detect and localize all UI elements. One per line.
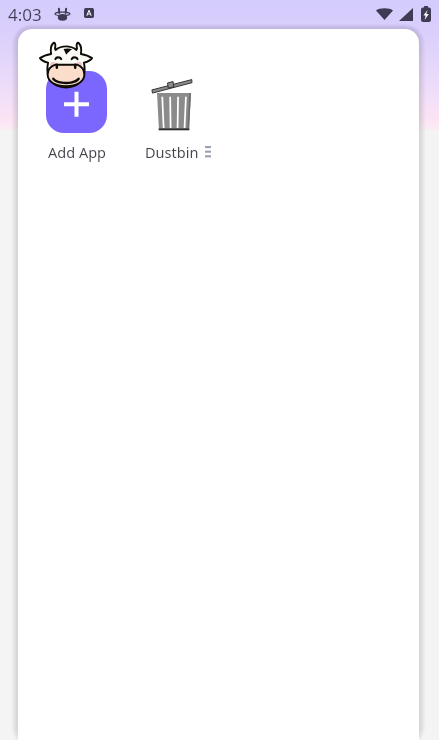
button[interactable]: Add App <box>28 31 132 171</box>
staticText: 4:03 <box>8 3 42 26</box>
button[interactable]: Dustbin <box>140 31 244 171</box>
staticText: Dustbin <box>145 142 199 162</box>
staticText: Add App <box>25 142 129 162</box>
